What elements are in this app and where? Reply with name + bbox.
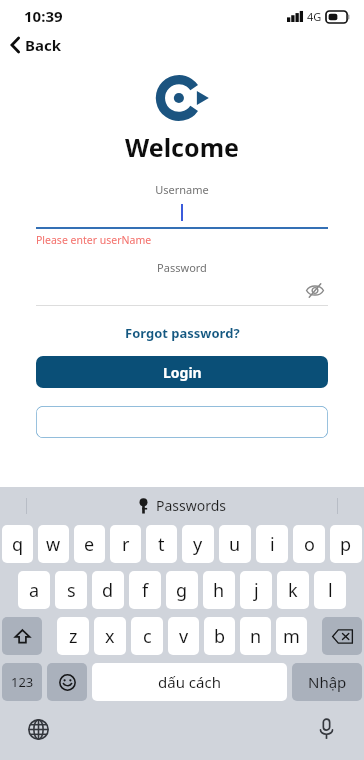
staticText: l xyxy=(328,578,333,603)
staticText: v xyxy=(179,624,189,649)
staticText: m xyxy=(283,624,300,649)
staticText: c xyxy=(143,624,152,649)
staticText: Nhập xyxy=(308,672,347,692)
button[interactable]: Voice input xyxy=(312,715,340,743)
staticText: h xyxy=(213,578,225,603)
staticText: 123 xyxy=(11,673,34,691)
button[interactable]: u xyxy=(219,525,251,563)
button[interactable] xyxy=(36,197,328,229)
staticText: x xyxy=(105,624,115,649)
staticText: e xyxy=(84,532,95,557)
staticText: p xyxy=(340,532,352,557)
staticText: d xyxy=(102,578,114,603)
button[interactable]: z xyxy=(57,617,89,655)
button[interactable] xyxy=(36,406,328,438)
staticText: u xyxy=(229,532,241,557)
button[interactable]: Forgot password? xyxy=(0,324,364,342)
button[interactable]: Change keyboard language xyxy=(24,715,52,743)
staticText: b xyxy=(214,624,226,649)
button[interactable]: l xyxy=(314,571,346,609)
button[interactable]: r xyxy=(110,525,141,563)
button[interactable]: Nhập xyxy=(292,663,362,701)
staticText: n xyxy=(250,624,262,649)
staticText: a xyxy=(29,578,40,603)
button[interactable]: g xyxy=(166,571,198,609)
staticText: w xyxy=(46,532,61,557)
button[interactable]: b xyxy=(204,617,235,655)
button[interactable]: e xyxy=(74,525,105,563)
button[interactable]: x xyxy=(94,617,126,655)
staticText: o xyxy=(304,532,315,557)
button[interactable]: k xyxy=(277,571,309,609)
staticText: k xyxy=(288,578,298,603)
staticText: z xyxy=(69,624,78,649)
button[interactable]: Passwords xyxy=(138,496,227,515)
staticText: Back xyxy=(25,35,62,55)
staticText: Welcome xyxy=(0,130,364,164)
button[interactable]: m xyxy=(276,617,307,655)
staticText: y xyxy=(193,532,203,557)
button[interactable]: d xyxy=(92,571,124,609)
button[interactable]: a xyxy=(18,571,50,609)
staticText: 10:39 xyxy=(24,6,63,26)
button[interactable]: c xyxy=(131,617,163,655)
button[interactable]: o xyxy=(293,525,325,563)
button[interactable]: 123 xyxy=(2,663,42,701)
button[interactable]: t xyxy=(146,525,177,563)
button[interactable]: Shift xyxy=(2,617,42,655)
staticText: g xyxy=(176,578,188,603)
staticText: r xyxy=(122,532,130,557)
button[interactable]: h xyxy=(203,571,235,609)
button[interactable]: dấu cách xyxy=(92,663,287,701)
button[interactable]: s xyxy=(55,571,87,609)
staticText: q xyxy=(12,532,24,557)
staticText: t xyxy=(158,532,165,557)
button[interactable]: f xyxy=(129,571,161,609)
staticText: 4G xyxy=(307,9,322,24)
staticText: Please enter userName xyxy=(36,233,152,247)
button[interactable]: Login xyxy=(36,356,328,388)
button[interactable]: Backspace xyxy=(322,617,362,655)
button[interactable]: w xyxy=(38,525,69,563)
staticText: Password xyxy=(0,260,364,275)
button[interactable]: y xyxy=(182,525,214,563)
staticText: f xyxy=(142,578,149,603)
button[interactable]: Emoji xyxy=(47,663,87,701)
button[interactable]: p xyxy=(330,525,362,563)
button[interactable]: Show password xyxy=(302,277,328,303)
staticText: Passwords xyxy=(156,496,227,515)
staticText: Login xyxy=(163,363,202,382)
staticText: Forgot password? xyxy=(125,324,240,342)
staticText: Username xyxy=(0,182,364,197)
button[interactable]: v xyxy=(168,617,199,655)
button[interactable]: n xyxy=(240,617,271,655)
staticText: dấu cách xyxy=(158,672,221,692)
staticText: s xyxy=(67,578,76,603)
button[interactable]: i xyxy=(256,525,288,563)
staticText: j xyxy=(254,578,259,603)
button[interactable]: Back xyxy=(0,32,364,58)
button[interactable]: j xyxy=(240,571,272,609)
button[interactable]: q xyxy=(2,525,33,563)
staticText: i xyxy=(270,532,275,557)
